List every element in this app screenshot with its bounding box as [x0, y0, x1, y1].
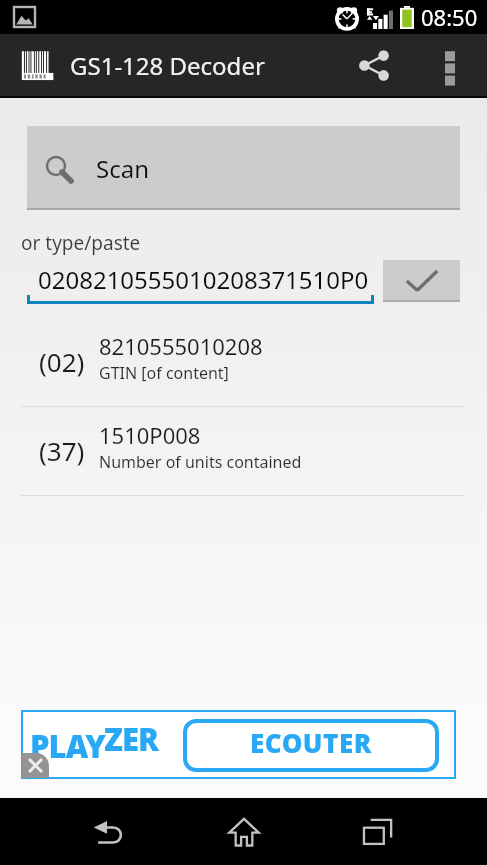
- staticText: (37): [39, 433, 85, 468]
- button[interactable]: More options: [418, 34, 482, 97]
- staticText: GS1-128 Decoder: [70, 49, 265, 82]
- staticText: 1510P008: [99, 420, 201, 450]
- staticText: GTIN [of content]: [99, 362, 229, 384]
- button[interactable]: Share: [330, 34, 418, 97]
- staticText: 0208210555010208371510P0: [38, 263, 369, 296]
- staticText: (02): [39, 344, 85, 379]
- staticText: or type/paste: [21, 230, 141, 256]
- button[interactable]: Decode: [383, 260, 460, 302]
- button[interactable]: (02): [0, 318, 487, 406]
- button[interactable]: ECOUTER: [183, 719, 439, 772]
- button[interactable]: PLAY: [22, 711, 455, 778]
- button[interactable]: Back: [49, 798, 169, 865]
- button[interactable]: Recents: [319, 798, 439, 865]
- button[interactable]: Close ad: [22, 753, 49, 778]
- button[interactable]: (37): [0, 407, 487, 495]
- staticText: PLAY: [30, 725, 105, 767]
- staticText: Number of units contained: [99, 451, 302, 473]
- staticText: 08:50: [421, 2, 478, 32]
- staticText: 8210555010208: [99, 331, 263, 361]
- staticText: ZER: [104, 718, 158, 760]
- button[interactable]: Scan: [27, 126, 460, 210]
- staticText: ECOUTER: [250, 725, 372, 760]
- button[interactable]: Home: [184, 798, 304, 865]
- staticText: Scan: [96, 152, 149, 185]
